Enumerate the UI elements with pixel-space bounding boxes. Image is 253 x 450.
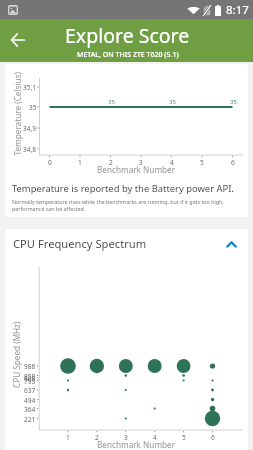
staticText: Benchmark Number bbox=[97, 439, 176, 450]
staticText: 988 bbox=[24, 362, 36, 371]
staticText: 35 bbox=[169, 98, 176, 106]
staticText: 3 bbox=[139, 158, 143, 167]
staticText: 35 bbox=[230, 98, 237, 106]
staticText: CPU Speed (MHz) bbox=[11, 321, 22, 388]
staticText: 1 bbox=[78, 158, 82, 167]
staticText: 35 bbox=[29, 103, 37, 112]
staticText: 34,9 bbox=[23, 124, 37, 133]
staticText: Temperature is reported by the Battery p… bbox=[12, 182, 234, 195]
staticText: 0 bbox=[48, 158, 52, 167]
staticText: 221 bbox=[24, 415, 36, 424]
staticText: 2 bbox=[109, 158, 113, 167]
staticText: 4 bbox=[170, 158, 174, 167]
staticText: Explore Score bbox=[65, 22, 190, 49]
staticText: Normally temperature rises while the ben… bbox=[12, 198, 241, 212]
staticText: 8:17 bbox=[226, 2, 249, 18]
staticText: 35,1 bbox=[23, 83, 37, 92]
staticText: Temperature (Celsius) bbox=[11, 71, 22, 155]
staticText: 808 bbox=[24, 374, 36, 383]
staticText: 858 bbox=[24, 372, 36, 381]
staticText: 5 bbox=[200, 158, 204, 167]
staticText: 5 bbox=[182, 433, 186, 442]
staticText: 35 bbox=[108, 98, 115, 106]
staticText: 6 bbox=[231, 158, 235, 167]
button[interactable]: CPU Frequency Spectrum bbox=[5, 229, 248, 258]
staticText: Benchmark Number bbox=[97, 164, 176, 175]
staticText: CPU Frequency Spectrum bbox=[13, 236, 147, 251]
staticText: 3 bbox=[124, 433, 128, 442]
staticText: 1 bbox=[66, 433, 70, 442]
staticText: 34,8 bbox=[23, 145, 37, 154]
staticText: 6 bbox=[211, 433, 215, 442]
button[interactable]: Collapse bbox=[217, 230, 245, 258]
staticText: 4 bbox=[153, 433, 157, 442]
staticText: METAL, ON THIS ZTE T620 (5.1) bbox=[77, 50, 179, 60]
staticText: 364 bbox=[24, 405, 36, 414]
staticText: 637 bbox=[24, 386, 36, 395]
staticText: 793 bbox=[24, 377, 36, 386]
button[interactable]: Back bbox=[2, 24, 34, 56]
staticText: 494 bbox=[24, 396, 36, 405]
staticText: 2 bbox=[95, 433, 99, 442]
